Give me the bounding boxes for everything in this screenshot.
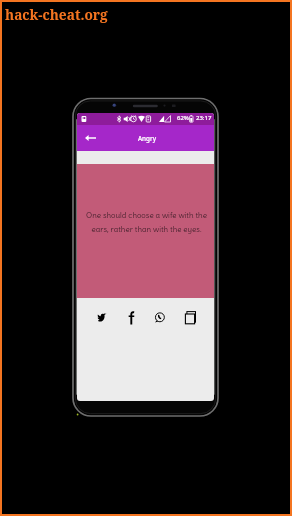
button[interactable]: Back — [80, 125, 100, 151]
button[interactable]: Share on WhatsApp — [149, 308, 169, 328]
staticText: 62% — [177, 114, 189, 122]
staticText: 23:17 — [196, 114, 212, 122]
staticText: One should choose a wife with the ears, … — [81, 210, 212, 234]
staticText: hack-cheat.org — [5, 5, 108, 24]
button[interactable]: Copy — [180, 308, 200, 328]
staticText: Angry — [138, 134, 156, 143]
button[interactable]: Share on Facebook — [121, 308, 141, 328]
button[interactable]: Share on Twitter — [92, 308, 112, 328]
